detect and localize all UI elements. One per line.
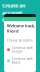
staticText: Welcome back, friend — [7, 23, 35, 34]
staticText: Continue with Apple — [12, 57, 33, 64]
staticText: to start — [2, 16, 20, 23]
staticText: Continue with Google — [12, 46, 33, 53]
staticText: Choose an option — [7, 39, 33, 42]
staticText: Create an account — [2, 2, 25, 16]
